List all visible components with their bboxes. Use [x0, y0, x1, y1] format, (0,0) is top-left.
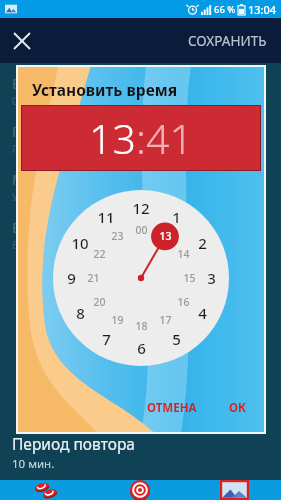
staticText: 16	[177, 295, 190, 309]
button[interactable]: ОК	[219, 394, 256, 422]
staticText: 13	[89, 110, 136, 166]
staticText: 13:04	[248, 2, 277, 17]
staticText: 8	[76, 303, 85, 323]
staticText: 3	[207, 268, 216, 288]
staticText: Мелодия	[12, 170, 75, 189]
button[interactable]: Beach	[0, 480, 93, 500]
button[interactable]: Picture	[187, 480, 281, 500]
staticText: 7	[102, 329, 111, 349]
staticText: 2	[198, 233, 207, 253]
staticText: 14	[177, 247, 190, 261]
staticText: 6	[137, 338, 146, 358]
staticText: 5	[172, 329, 181, 349]
staticText: СОХРАНИТЬ	[188, 32, 267, 50]
staticText: Будильник	[12, 74, 85, 93]
staticText: 20	[93, 295, 106, 309]
staticText: 15	[183, 271, 196, 285]
staticText: 00	[135, 223, 148, 237]
button[interactable]: Clock face, 13 hours	[53, 190, 229, 366]
button[interactable]: Close	[0, 19, 44, 63]
staticText: 66 %	[214, 3, 236, 16]
staticText: Пн Вт Ср	[12, 141, 59, 156]
button[interactable]: Период повтора	[0, 433, 281, 480]
staticText: 22	[93, 247, 106, 261]
staticText: Вкл.	[12, 237, 35, 252]
staticText: 9	[67, 268, 76, 288]
staticText: Период повтора	[12, 433, 135, 454]
staticText: 23	[111, 229, 124, 243]
staticText: ОТМЕНА	[147, 400, 197, 416]
staticText: 18	[135, 319, 148, 333]
staticText: 12	[132, 198, 150, 218]
button[interactable]: Target	[93, 480, 187, 500]
staticText: 17	[159, 313, 172, 327]
staticText: 07:30	[12, 93, 41, 108]
staticText: 1	[172, 207, 181, 227]
staticText: 19	[111, 313, 124, 327]
staticText: Повтор	[12, 122, 62, 141]
staticText: 11	[97, 207, 115, 227]
staticText: Вибрация	[12, 218, 80, 237]
button[interactable]: 13	[21, 105, 261, 171]
staticText: 10	[71, 233, 89, 253]
staticText: :41	[136, 110, 193, 166]
staticText: 13	[159, 229, 172, 243]
staticText: 10 мин.	[12, 456, 55, 472]
staticText: Установить время	[32, 79, 178, 100]
staticText: 4	[198, 303, 207, 323]
staticText: ОК	[229, 400, 246, 416]
staticText: 21	[87, 271, 100, 285]
button[interactable]: СОХРАНИТЬ	[174, 22, 281, 60]
button[interactable]: ОТМЕНА	[139, 394, 205, 422]
staticText: Утро	[12, 189, 38, 204]
